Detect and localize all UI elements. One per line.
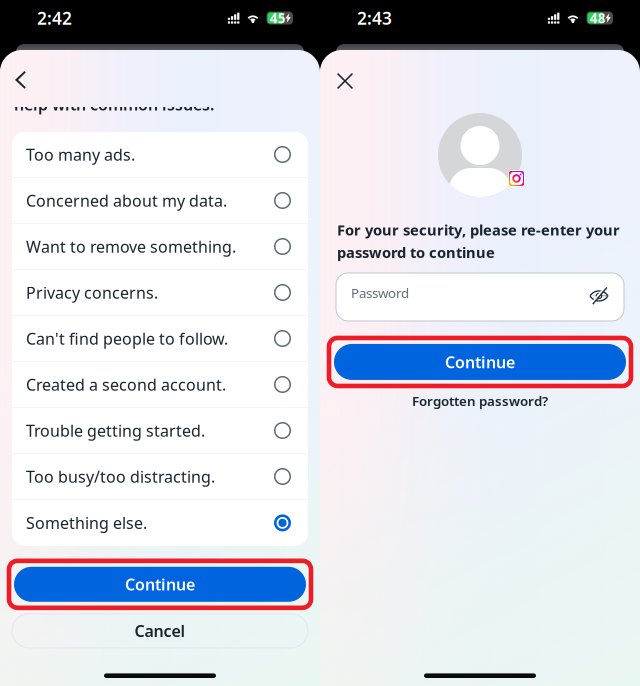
staticText: Concerned about my data. [26, 190, 227, 211]
staticText: 2:43 [357, 6, 392, 29]
staticText: password to continue [337, 242, 495, 262]
button[interactable]: Cancel [12, 614, 308, 648]
staticText: Something else. [26, 512, 147, 533]
staticText: Privacy concerns. [26, 282, 158, 303]
staticText: Can't find people to follow. [26, 328, 228, 349]
staticText: 2:42 [37, 6, 72, 29]
staticText: Password [351, 284, 409, 302]
button[interactable]: Privacy concerns. [12, 270, 308, 316]
staticText: Continue [125, 574, 195, 595]
staticText: 45 [270, 9, 286, 27]
staticText: Cancel [134, 620, 185, 641]
staticText: Created a second account. [26, 374, 226, 395]
button[interactable]: Continue [14, 567, 306, 602]
button[interactable]: Concerned about my data. [12, 178, 308, 224]
button[interactable]: Show password [585, 282, 613, 310]
staticText: Too busy/too distracting. [26, 466, 215, 487]
button[interactable]: Created a second account. [12, 362, 308, 408]
button[interactable]: Close [320, 63, 366, 99]
staticText: Want to remove something. [26, 236, 236, 257]
button[interactable]: Forgotten password? [402, 388, 558, 414]
staticText: Continue [445, 351, 515, 372]
button[interactable]: Trouble getting started. [12, 408, 308, 454]
button[interactable]: Can't find people to follow. [12, 316, 308, 362]
staticText: Forgotten password? [412, 392, 548, 410]
button[interactable]: Back [0, 62, 39, 98]
button[interactable]: Want to remove something. [12, 224, 308, 270]
staticText: Trouble getting started. [26, 420, 205, 441]
staticText: For your security, please re-enter your [337, 220, 620, 239]
button[interactable]: Something else. [12, 500, 308, 546]
staticText: help with common issues. [14, 94, 214, 115]
button[interactable]: Too busy/too distracting. [12, 454, 308, 500]
staticText: 48 [590, 9, 606, 27]
button[interactable]: Too many ads. [12, 132, 308, 178]
staticText: Too many ads. [26, 144, 135, 165]
button[interactable]: Continue [334, 344, 626, 380]
